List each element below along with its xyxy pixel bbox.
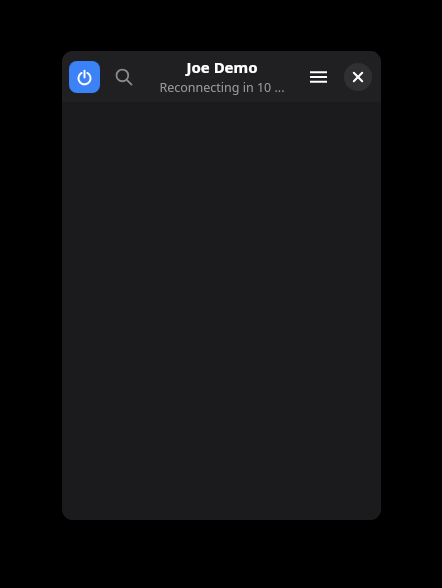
button[interactable]: Close: [344, 63, 372, 91]
staticText: Joe Demo: [186, 57, 258, 77]
button[interactable]: Menu: [304, 63, 332, 91]
button[interactable]: Power: [69, 61, 100, 93]
button[interactable]: Search: [110, 63, 138, 91]
staticText: Reconnecting in 10 ...: [159, 79, 285, 96]
